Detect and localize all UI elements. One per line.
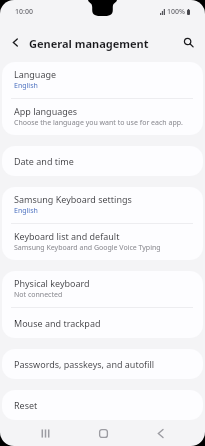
staticText: Physical keyboard xyxy=(14,277,90,289)
staticText: Passwords, passkeys, and autofill xyxy=(14,358,155,370)
button[interactable]: App languages xyxy=(2,99,203,135)
button[interactable]: Reset xyxy=(2,390,203,420)
staticText: Not connected xyxy=(14,290,63,300)
button[interactable]: Date and time xyxy=(2,146,203,176)
button[interactable]: Samsung Keyboard settings xyxy=(2,187,203,223)
staticText: 100% xyxy=(167,7,185,17)
button[interactable]: Passwords, passkeys, and autofill xyxy=(2,349,203,379)
staticText: General management xyxy=(29,36,149,51)
staticText: Samsung Keyboard and Google Voice Typing xyxy=(14,243,161,253)
staticText: Samsung Keyboard settings xyxy=(14,193,132,205)
button[interactable]: Recent apps xyxy=(32,420,58,446)
button[interactable]: Mouse and trackpad xyxy=(2,308,203,338)
button[interactable]: Physical keyboard xyxy=(2,271,203,307)
button[interactable]: Search xyxy=(180,34,197,51)
staticText: Choose the language you want to use for … xyxy=(14,118,183,128)
staticText: English xyxy=(14,81,38,91)
staticText: Reset xyxy=(14,399,38,411)
staticText: Language xyxy=(14,68,57,80)
button[interactable]: Back xyxy=(147,420,173,446)
staticText: Keyboard list and default xyxy=(14,230,120,242)
staticText: Date and time xyxy=(14,155,74,167)
button[interactable]: Keyboard list and default xyxy=(2,224,203,260)
button[interactable]: Language xyxy=(2,62,203,98)
button[interactable]: Back xyxy=(7,34,24,51)
staticText: App languages xyxy=(14,105,78,117)
button[interactable]: Home xyxy=(90,420,116,446)
staticText: 10:00 xyxy=(15,7,33,17)
staticText: Mouse and trackpad xyxy=(14,317,101,329)
staticText: English xyxy=(14,206,38,216)
